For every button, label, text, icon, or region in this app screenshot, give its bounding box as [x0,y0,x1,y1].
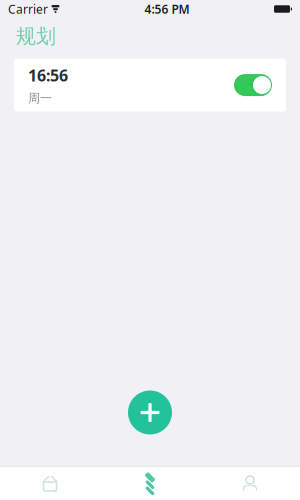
button[interactable]: Home [0,467,100,500]
staticText: 4:56 PM [144,1,189,17]
button[interactable]: Plans [100,467,200,500]
staticText: 周一 [28,91,52,105]
staticText: Carrier [8,1,48,17]
button[interactable]: Add [128,390,172,434]
button[interactable]: 16:56 [14,59,286,112]
staticText: 规划 [16,24,56,49]
staticText: 16:56 [28,65,68,86]
button[interactable]: Profile [200,467,300,500]
